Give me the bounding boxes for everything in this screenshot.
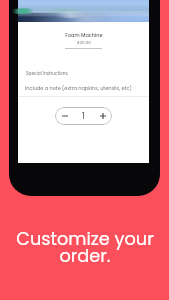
staticText: Foam Machine — [65, 32, 103, 39]
staticText: $20.00 — [77, 40, 91, 46]
staticText: Include a note (extra napkins, utensils,… — [25, 85, 132, 92]
button[interactable]: Include a note (extra napkins, utensils,… — [18, 80, 149, 96]
staticText: Special Instructions — [26, 70, 68, 76]
button[interactable]: Decrease quantity — [55, 107, 74, 125]
staticText: Customize your order. — [16, 226, 154, 268]
staticText: 1 — [82, 111, 85, 122]
button[interactable]: Increase quantity — [93, 107, 112, 125]
